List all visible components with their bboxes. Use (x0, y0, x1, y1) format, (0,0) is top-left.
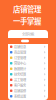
button[interactable]: 商品管理 (8, 49, 48, 55)
staticText: 员工管理 (14, 77, 26, 82)
staticText: 数据统计 (14, 66, 26, 71)
staticText: 一手掌握 (13, 15, 41, 26)
button[interactable]: 财务结算 (8, 71, 48, 77)
button[interactable]: 订单管理 (8, 55, 48, 60)
staticText: 营销中心 (14, 61, 26, 65)
button[interactable]: 客户服务 (8, 82, 48, 88)
button[interactable]: 店铺信息 (8, 44, 48, 49)
staticText: 店铺管理 (13, 3, 41, 14)
staticText: 系统设置 (14, 94, 26, 98)
staticText: 客户服务 (14, 83, 26, 87)
button[interactable]: 店铺装修 (8, 88, 48, 93)
staticText: 订单管理 (14, 55, 26, 60)
staticText: 商品管理 (14, 50, 26, 54)
staticText: 店铺装修 (14, 88, 26, 93)
button[interactable]: 营销中心 (8, 60, 48, 66)
staticText: 财务结算 (14, 72, 26, 76)
button[interactable]: 系统设置 (8, 93, 48, 99)
staticText: 全部功能 (22, 32, 34, 36)
staticText: 店铺信息 (14, 44, 26, 49)
button[interactable]: 数据统计 (8, 66, 48, 71)
button[interactable]: 员工管理 (8, 77, 48, 82)
